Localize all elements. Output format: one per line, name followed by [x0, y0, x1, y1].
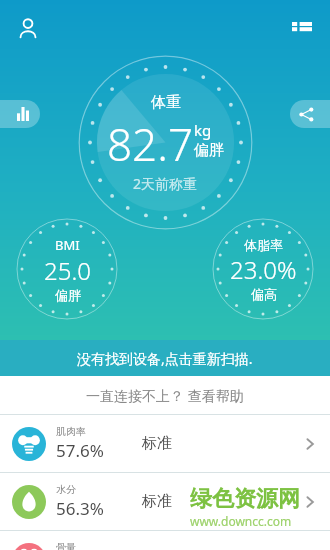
staticText: 偏高	[251, 286, 277, 302]
staticText: BMI	[55, 236, 80, 254]
staticText: 偏胖	[55, 287, 81, 303]
staticText: 2天前称重	[133, 174, 198, 193]
button[interactable]: BMI	[16, 218, 118, 320]
staticText: 体脂率	[244, 237, 283, 253]
button[interactable]: Records list	[282, 8, 322, 48]
staticText: kg	[194, 120, 212, 140]
staticText: 56.3%	[56, 497, 104, 520]
button[interactable]: 没有找到设备,点击重新扫描.	[0, 340, 330, 376]
staticText: 骨量	[56, 541, 76, 550]
staticText: 一直连接不上？ 查看帮助	[86, 386, 244, 405]
button[interactable]: 骨量	[0, 531, 330, 550]
staticText: 偏胖	[194, 141, 224, 160]
staticText: 没有找到设备,点击重新扫描.	[77, 349, 253, 368]
staticText: 体重	[151, 93, 181, 112]
staticText: 水分	[56, 483, 76, 496]
staticText: www.downcc.com	[190, 513, 292, 529]
button[interactable]: 肌肉率	[0, 415, 330, 472]
button[interactable]: Share	[290, 100, 330, 128]
staticText: 标准	[142, 434, 302, 453]
button[interactable]: 体脂率	[212, 218, 314, 320]
button[interactable]: Statistics	[0, 100, 40, 128]
button[interactable]: 水分	[0, 473, 330, 530]
button[interactable]: Profile	[8, 8, 48, 48]
staticText: 25.0	[44, 254, 91, 287]
button[interactable]: 一直连接不上？ 查看帮助	[0, 376, 330, 414]
staticText: 82.7	[107, 114, 194, 174]
staticText: 肌肉率	[56, 425, 86, 438]
staticText: 23.0%	[230, 253, 297, 286]
staticText: 绿色资源网	[190, 485, 300, 513]
staticText: 57.6%	[56, 439, 104, 462]
staticText: 标准	[142, 492, 302, 511]
button[interactable]: 体重	[78, 55, 253, 230]
